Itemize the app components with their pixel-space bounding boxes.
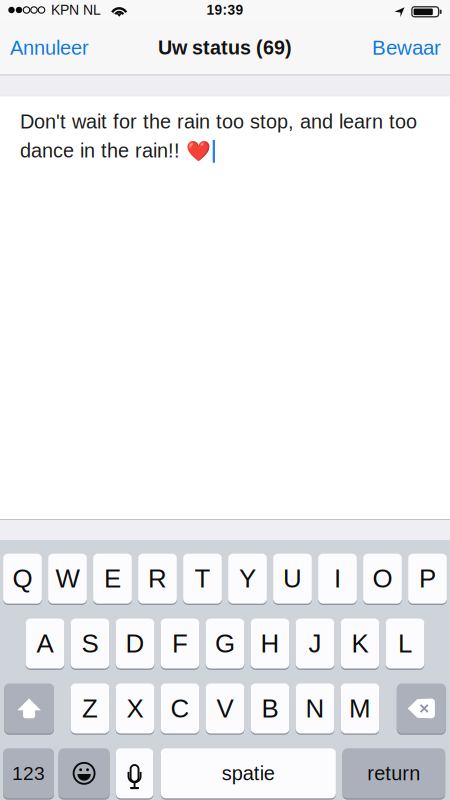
button[interactable]: Dictation <box>116 748 153 799</box>
staticText: K <box>351 629 368 658</box>
staticText: Y <box>239 564 256 593</box>
staticText: B <box>261 694 278 723</box>
button[interactable]: 123 <box>3 748 54 799</box>
button[interactable]: Emoji <box>59 748 110 799</box>
staticText: Uw status (69) <box>158 37 292 59</box>
staticText: L <box>398 629 412 658</box>
button[interactable]: P <box>408 553 447 604</box>
button[interactable]: H <box>251 618 289 669</box>
button[interactable]: D <box>116 618 154 669</box>
staticText: F <box>172 629 188 658</box>
button[interactable]: M <box>341 683 379 734</box>
button[interactable]: Annuleer <box>0 20 99 76</box>
staticText: H <box>260 629 279 658</box>
button[interactable]: C <box>161 683 199 734</box>
staticText: E <box>104 564 121 593</box>
staticText: I <box>334 564 341 593</box>
staticText: D <box>125 629 144 658</box>
button[interactable]: Bewaar <box>363 20 450 76</box>
staticText: return <box>367 762 420 784</box>
button[interactable]: U <box>273 553 312 604</box>
staticText: T <box>194 564 210 593</box>
button[interactable]: K <box>341 618 379 669</box>
button[interactable]: return <box>342 748 445 799</box>
staticText: M <box>349 694 371 723</box>
staticText: V <box>216 694 233 723</box>
staticText: S <box>81 629 98 658</box>
button[interactable]: B <box>251 683 289 734</box>
staticText: Bewaar <box>372 36 441 59</box>
button[interactable]: Don't wait for the rain too stop, and le… <box>0 96 450 519</box>
button[interactable]: Z <box>71 683 109 734</box>
button[interactable]: Delete <box>397 683 446 734</box>
button[interactable]: W <box>48 553 87 604</box>
staticText: U <box>283 564 302 593</box>
staticText: O <box>372 564 392 593</box>
staticText: N <box>305 694 324 723</box>
button[interactable]: I <box>318 553 357 604</box>
button[interactable]: V <box>206 683 244 734</box>
button[interactable]: Q <box>3 553 42 604</box>
staticText: Q <box>12 564 32 593</box>
staticText: C <box>170 694 189 723</box>
button[interactable]: R <box>138 553 177 604</box>
staticText: 19:39 <box>206 2 243 18</box>
button[interactable]: G <box>206 618 244 669</box>
staticText: dance in the rain!! ❤️ <box>20 139 211 162</box>
button[interactable]: X <box>116 683 154 734</box>
staticText: W <box>55 564 79 593</box>
button[interactable]: J <box>296 618 334 669</box>
button[interactable]: Shift <box>4 683 54 734</box>
staticText: G <box>215 629 235 658</box>
staticText: spatie <box>222 762 275 784</box>
button[interactable]: A <box>26 618 64 669</box>
staticText: J <box>308 629 321 658</box>
button[interactable]: E <box>93 553 132 604</box>
button[interactable]: T <box>183 553 222 604</box>
staticText: Z <box>82 694 98 723</box>
staticText: Don't wait for the rain too stop, and le… <box>20 110 417 133</box>
button[interactable]: O <box>363 553 402 604</box>
staticText: 123 <box>12 763 45 784</box>
staticText: Annuleer <box>10 37 89 59</box>
staticText: R <box>148 564 167 593</box>
button[interactable]: S <box>71 618 109 669</box>
staticText: KPN NL <box>51 2 101 18</box>
button[interactable]: N <box>296 683 334 734</box>
staticText: P <box>419 564 436 593</box>
staticText: X <box>126 694 143 723</box>
staticText: A <box>36 629 53 658</box>
button[interactable]: Y <box>228 553 267 604</box>
button[interactable]: spatie <box>161 748 336 799</box>
button[interactable]: L <box>386 618 424 669</box>
button[interactable]: F <box>161 618 199 669</box>
